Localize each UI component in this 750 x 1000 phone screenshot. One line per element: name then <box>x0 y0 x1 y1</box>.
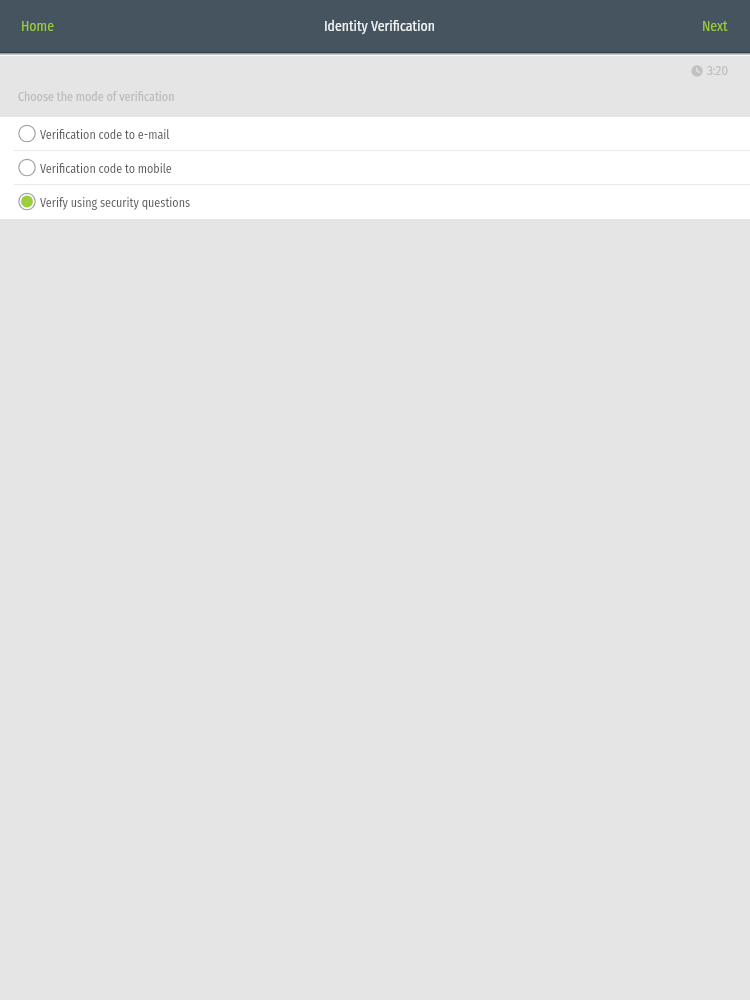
button[interactable]: Home <box>0 8 76 45</box>
button[interactable]: Next <box>680 8 750 45</box>
button[interactable]: Verification code to mobile <box>0 151 750 184</box>
button[interactable]: Time remaining <box>685 61 750 81</box>
staticText: Verification code to mobile <box>40 162 172 176</box>
staticText: Home <box>21 18 55 35</box>
staticText: Verification code to e-mail <box>40 128 170 142</box>
staticText: Identity Verification <box>324 18 435 35</box>
button[interactable]: Verification code to e-mail <box>0 117 750 150</box>
staticText: Next <box>702 18 728 35</box>
button[interactable]: Verify using security questions <box>0 185 750 219</box>
staticText: 3:20 <box>707 63 729 79</box>
other: Time remaining <box>691 65 703 77</box>
staticText: Choose the mode of verification <box>18 90 175 104</box>
staticText: Verify using security questions <box>40 196 191 210</box>
